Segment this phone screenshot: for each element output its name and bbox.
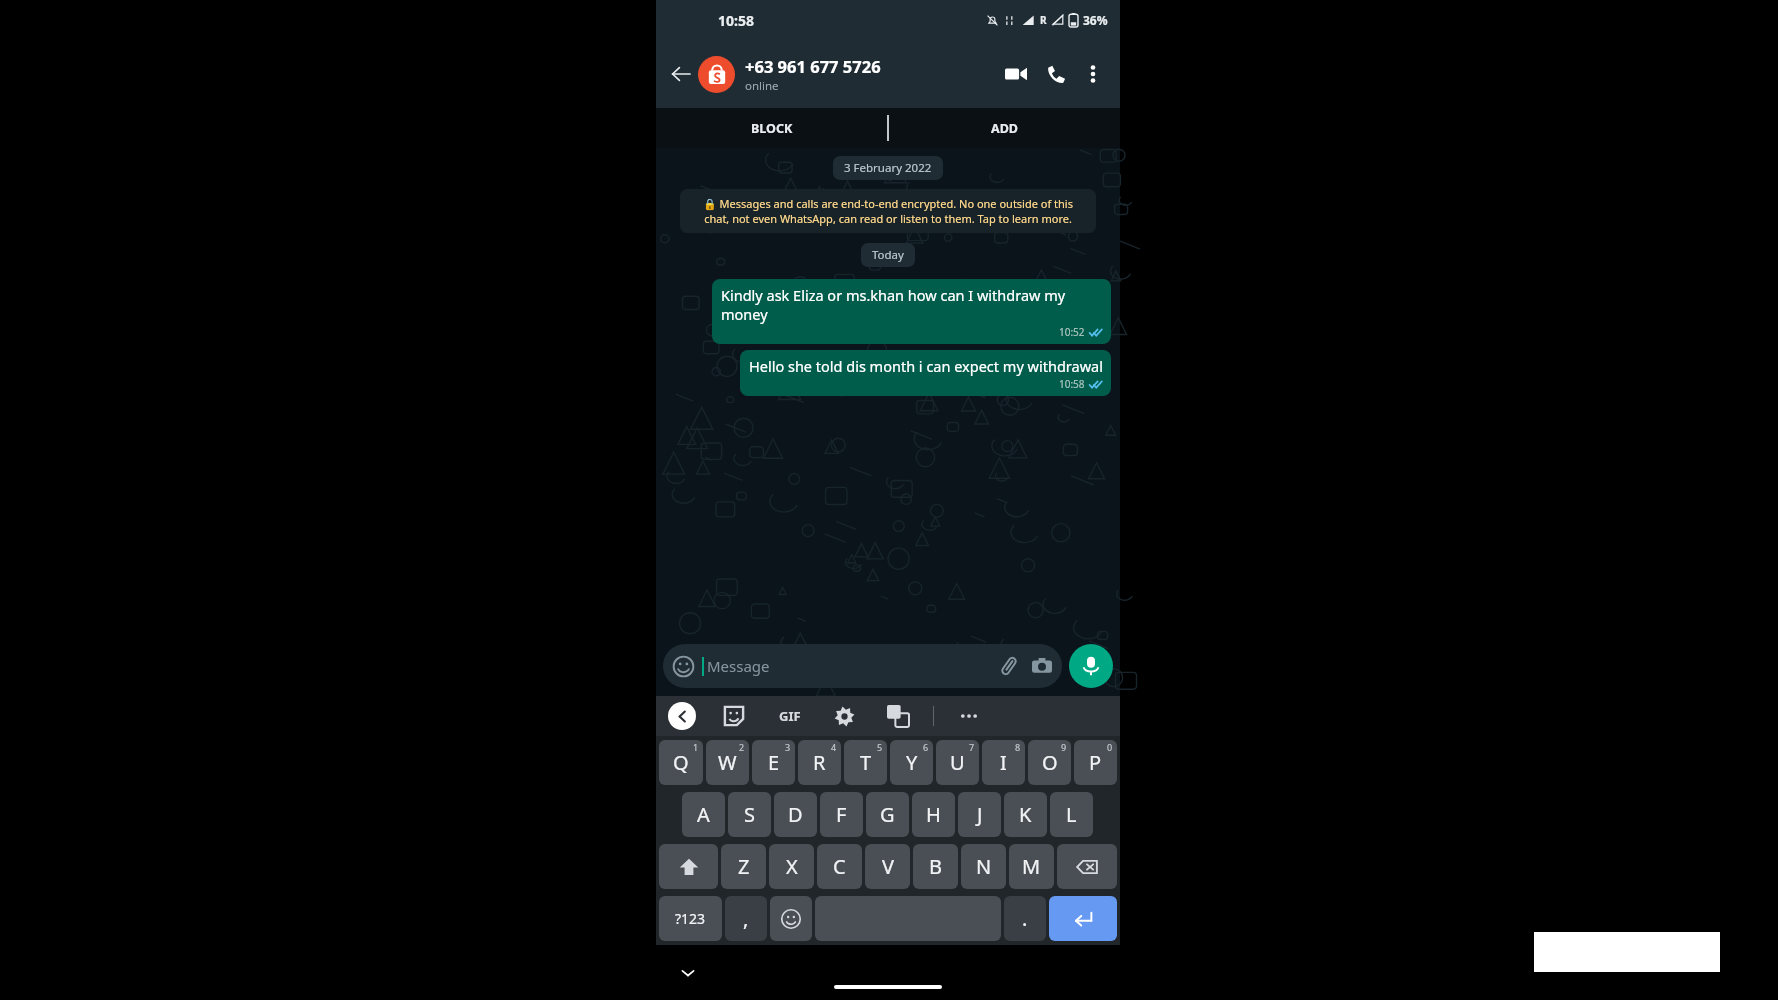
button[interactable]: U <box>936 740 979 785</box>
button[interactable]: Collapse toolbar <box>668 702 696 730</box>
other: Attach <box>999 656 1019 676</box>
staticText: 9 <box>1061 741 1067 753</box>
staticText: Z <box>738 853 750 880</box>
button[interactable]: Back <box>666 59 696 89</box>
staticText: BLOCK <box>751 120 793 137</box>
other: Camera <box>1032 656 1052 676</box>
button[interactable]: More <box>958 705 980 727</box>
button[interactable]: GIF <box>779 704 801 728</box>
staticText: G <box>880 801 895 828</box>
staticText: E <box>768 749 780 776</box>
staticText: I <box>1000 749 1007 776</box>
staticText: Today <box>872 247 904 263</box>
button[interactable]: P <box>1074 740 1117 785</box>
staticText: 3 <box>785 741 791 753</box>
button[interactable]: More options <box>1076 57 1110 91</box>
button[interactable]: Hello she told dis month i can expect my… <box>740 350 1111 396</box>
button[interactable]: Profile photo <box>698 56 735 93</box>
staticText: ADD <box>991 120 1018 137</box>
button[interactable]: N <box>961 844 1006 889</box>
button[interactable]: Q <box>659 740 703 785</box>
button[interactable]: Enter <box>1049 896 1117 941</box>
staticText: O <box>1042 749 1058 776</box>
staticText: U <box>950 749 965 776</box>
button[interactable]: Today <box>861 243 915 267</box>
button[interactable]: L <box>1050 792 1093 837</box>
button[interactable]: H <box>912 792 955 837</box>
staticText: 3 February 2022 <box>844 160 932 176</box>
button[interactable]: Shift <box>659 844 718 889</box>
staticText: Hello she told dis month i can expect my… <box>749 356 1103 376</box>
button[interactable]: G <box>866 792 909 837</box>
staticText: +63 961 677 5726 <box>745 55 881 77</box>
button[interactable]: X <box>769 844 814 889</box>
staticText: 10:58 <box>718 11 754 30</box>
button[interactable]: R <box>798 740 841 785</box>
button[interactable]: Stickers <box>722 704 746 728</box>
staticText: R <box>1040 13 1047 27</box>
button[interactable]: I <box>982 740 1025 785</box>
staticText: , <box>743 905 749 932</box>
button[interactable]: B <box>913 844 958 889</box>
button[interactable]: J <box>958 792 1001 837</box>
staticText: H <box>926 801 941 828</box>
button[interactable]: , <box>725 896 767 941</box>
staticText: Q <box>673 749 689 776</box>
button[interactable]: Voice message <box>1069 644 1113 688</box>
button[interactable]: T <box>844 740 887 785</box>
staticText: GIF <box>779 707 801 725</box>
button[interactable]: 🔒 Messages and calls are end-to-end encr… <box>680 189 1096 233</box>
button[interactable]: D <box>774 792 817 837</box>
button[interactable]: K <box>1004 792 1047 837</box>
staticText: . <box>1022 905 1028 932</box>
button[interactable]: ?123 <box>659 896 722 941</box>
staticText: 10:58 <box>1059 377 1085 391</box>
button[interactable]: W <box>706 740 749 785</box>
button[interactable]: Kindly ask Eliza or ms.khan how can I wi… <box>712 279 1111 344</box>
button[interactable]: Z <box>721 844 766 889</box>
button[interactable]: BLOCK <box>656 108 888 148</box>
button[interactable]: ADD <box>888 108 1120 148</box>
staticText: B <box>929 853 942 880</box>
button[interactable]: C <box>817 844 862 889</box>
button[interactable]: O <box>1028 740 1071 785</box>
button[interactable]: F <box>820 792 863 837</box>
button[interactable]: Backspace <box>1057 844 1117 889</box>
staticText: ?123 <box>675 909 706 928</box>
button[interactable]: Emoji <box>770 896 812 941</box>
other: Emoji <box>673 656 694 677</box>
button[interactable]: A <box>682 792 725 837</box>
staticText: X <box>786 853 798 880</box>
staticText: Message <box>707 656 999 676</box>
staticText: 5 <box>877 741 883 753</box>
button[interactable]: S <box>728 792 771 837</box>
staticText: 8 <box>1015 741 1021 753</box>
staticText: 7 <box>969 741 975 753</box>
button[interactable]: Emoji <box>663 644 1062 688</box>
staticText: P <box>1089 749 1102 776</box>
staticText: Kindly ask Eliza or ms.khan how can I wi… <box>721 285 1103 324</box>
button[interactable]: Hide keyboard <box>676 961 700 985</box>
staticText: T <box>860 749 872 776</box>
staticText: J <box>977 801 983 828</box>
button[interactable]: Y <box>890 740 933 785</box>
button[interactable]: 3 February 2022 <box>833 156 943 180</box>
button[interactable]: E <box>752 740 795 785</box>
staticText: L <box>1066 801 1077 828</box>
button[interactable]: V <box>865 844 910 889</box>
staticText: 4 <box>831 741 837 753</box>
button[interactable]: Voice call <box>1036 54 1076 94</box>
button[interactable]: Settings <box>834 706 855 727</box>
staticText: 36% <box>1083 12 1108 28</box>
staticText: K <box>1019 801 1032 828</box>
staticText: online <box>745 78 779 94</box>
staticText: D <box>788 801 803 828</box>
button[interactable]: +63 961 677 5726 <box>745 55 996 94</box>
staticText: A <box>697 801 710 828</box>
button[interactable]: . <box>1004 896 1046 941</box>
button[interactable]: Translate <box>887 705 909 727</box>
button[interactable]: Video call <box>996 54 1036 94</box>
button[interactable]: M <box>1009 844 1054 889</box>
staticText: 0 <box>1107 741 1113 753</box>
